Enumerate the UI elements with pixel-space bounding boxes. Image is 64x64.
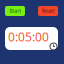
staticText: Reset (42, 8, 54, 14)
button[interactable]: Start (5, 6, 25, 16)
staticText: 0:05:00 (8, 29, 49, 45)
staticText: Start (9, 8, 20, 14)
button[interactable]: Reset (38, 6, 58, 16)
